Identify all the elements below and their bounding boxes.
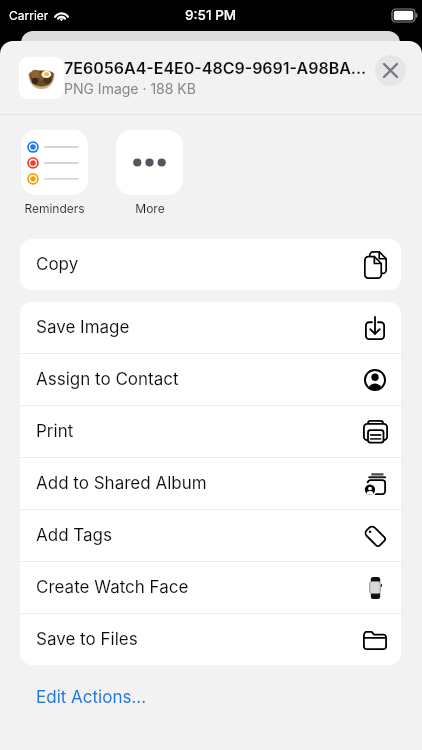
button[interactable]: Add Tags bbox=[20, 510, 401, 561]
button[interactable]: Save Image bbox=[20, 302, 401, 353]
staticText: 7E6056A4-E4E0-48C9-9691-A98BA... bbox=[64, 58, 367, 77]
staticText: Create Watch Face bbox=[36, 577, 189, 598]
staticText: PNG Image · 188 KB bbox=[64, 80, 196, 97]
staticText: Assign to Contact bbox=[36, 369, 179, 390]
staticText: Carrier bbox=[9, 8, 49, 23]
button[interactable]: Close bbox=[375, 55, 406, 86]
button[interactable]: Save to Files bbox=[20, 614, 401, 665]
button[interactable]: Print bbox=[20, 406, 401, 457]
staticText: Edit Actions... bbox=[36, 687, 147, 708]
staticText: Copy bbox=[36, 254, 79, 275]
button[interactable]: Assign to Contact bbox=[20, 354, 401, 405]
button[interactable]: Create Watch Face bbox=[20, 562, 401, 613]
staticText: Add Tags bbox=[36, 525, 113, 546]
staticText: More bbox=[135, 201, 165, 216]
button[interactable]: Edit Actions... bbox=[0, 665, 422, 723]
button[interactable]: Add to Shared Album bbox=[20, 458, 401, 509]
staticText: Save Image bbox=[36, 317, 130, 338]
staticText: Print bbox=[36, 421, 74, 442]
button[interactable]: More bbox=[116, 130, 183, 216]
staticText: Reminders bbox=[24, 201, 85, 216]
staticText: Add to Shared Album bbox=[36, 473, 207, 494]
button[interactable]: Copy bbox=[20, 239, 401, 290]
staticText: 9:51 PM bbox=[185, 7, 237, 23]
staticText: Save to Files bbox=[36, 629, 138, 650]
button[interactable]: Reminders bbox=[21, 130, 88, 216]
